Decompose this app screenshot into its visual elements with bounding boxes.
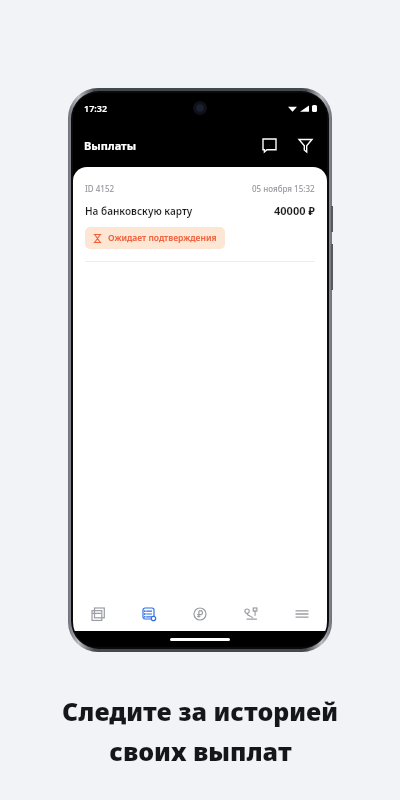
button[interactable]: Orders — [73, 597, 123, 631]
staticText: ID 4152 — [85, 183, 115, 194]
staticText: 05 ноября 15:32 — [252, 183, 315, 194]
button[interactable]: Map — [225, 597, 276, 631]
button[interactable]: Finance — [174, 597, 225, 631]
staticText: Следите за историей — [62, 694, 338, 728]
button[interactable]: Chat — [256, 132, 282, 158]
button[interactable]: Payouts — [123, 597, 174, 631]
staticText: 40000 ₽ — [274, 203, 315, 218]
button[interactable]: Filter — [292, 132, 318, 158]
button[interactable]: ID 4152 — [73, 183, 327, 249]
button[interactable]: Menu — [276, 597, 327, 631]
staticText: На банковскую карту — [85, 204, 193, 218]
staticText: Выплаты — [84, 138, 137, 153]
button[interactable]: Ожидает подтверждения — [85, 227, 225, 249]
staticText: 17:32 — [84, 102, 108, 114]
staticText: своих выплат — [109, 734, 292, 768]
staticText: Ожидает подтверждения — [108, 232, 217, 244]
